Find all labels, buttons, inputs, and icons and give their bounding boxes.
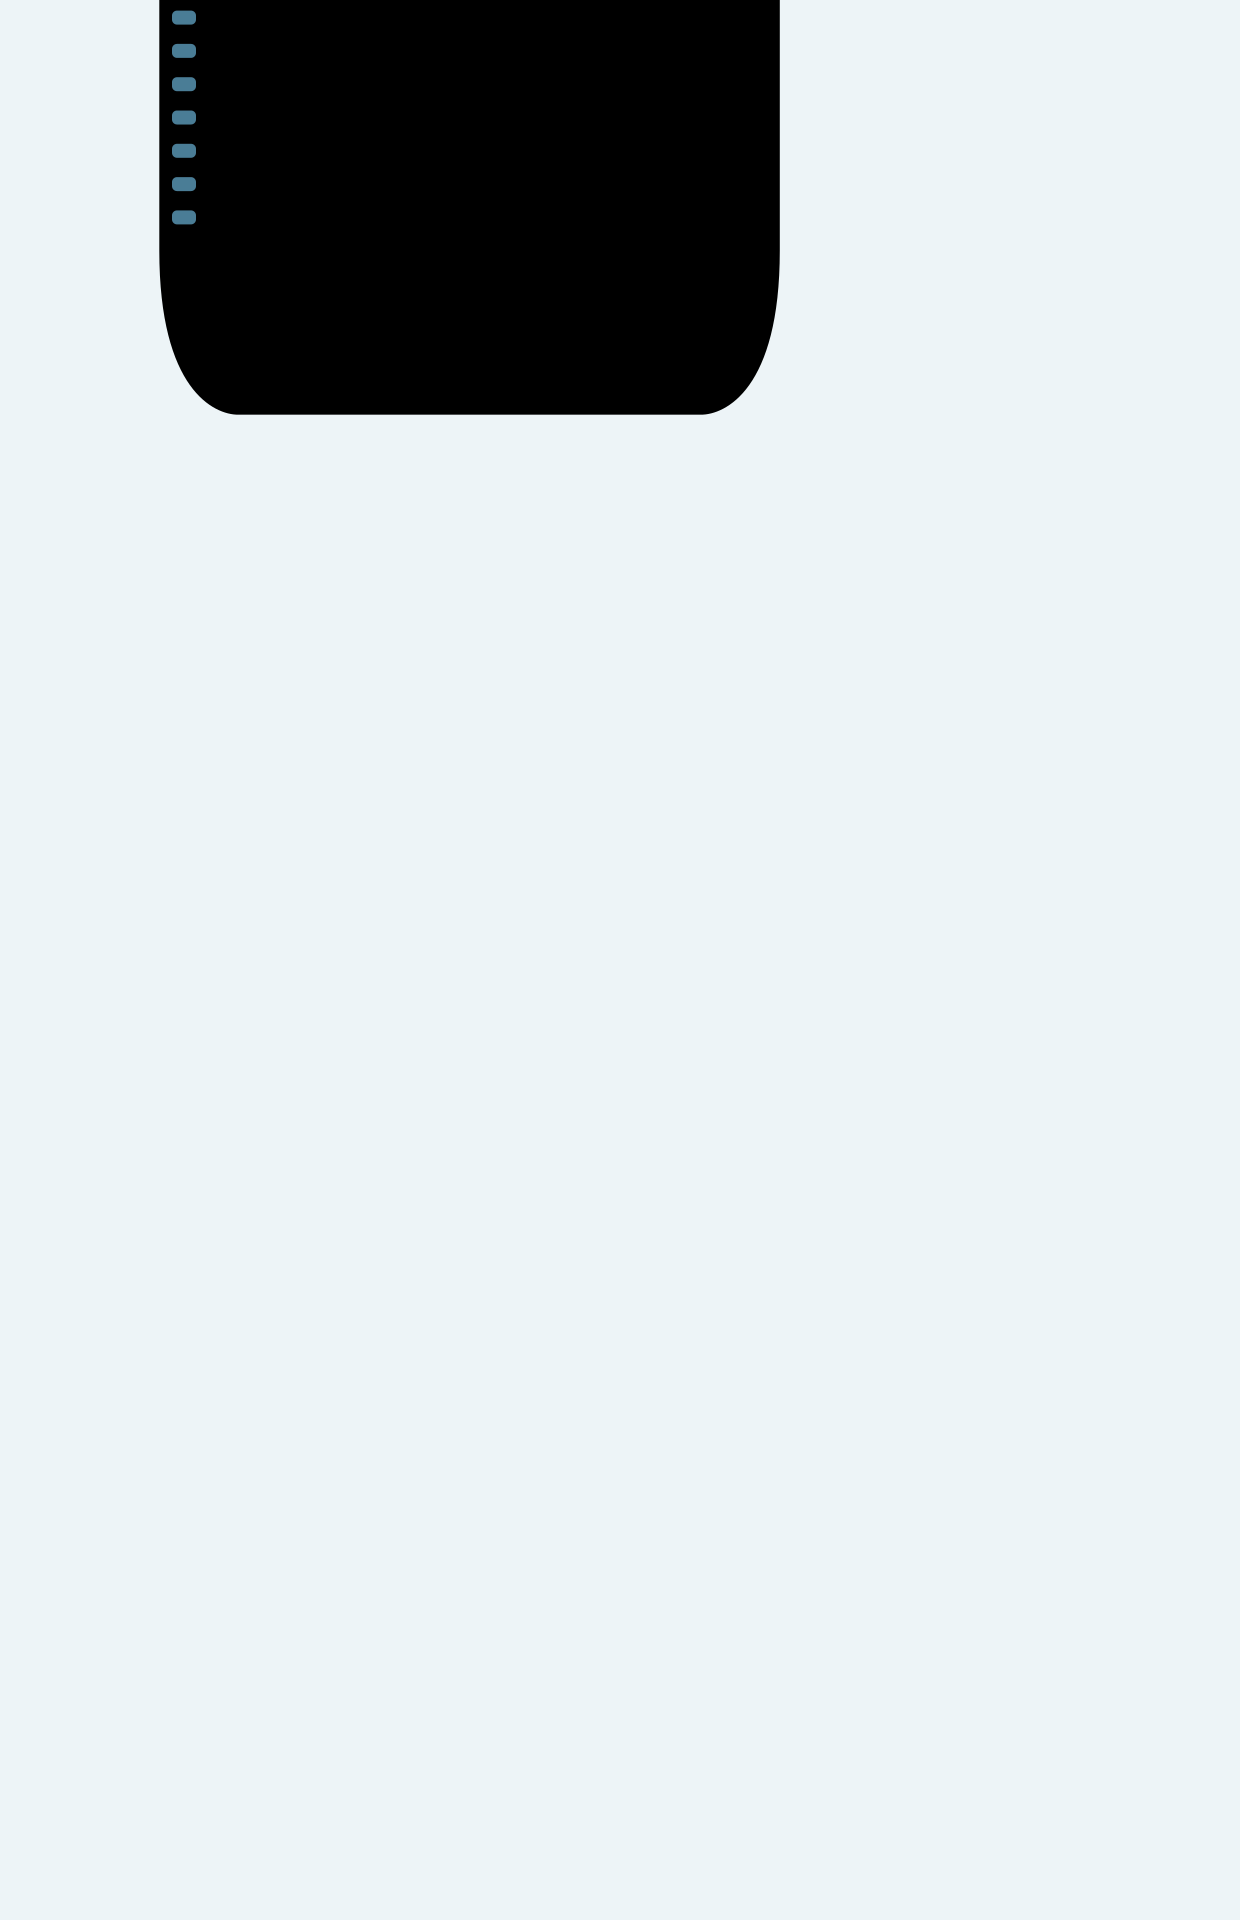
button[interactable]: Row 6 xyxy=(172,177,196,191)
button[interactable]: Row 1 xyxy=(172,11,196,25)
button[interactable]: Row 2 xyxy=(172,44,196,58)
button[interactable]: Row 3 xyxy=(172,77,196,91)
button[interactable]: Row 5 xyxy=(172,144,196,158)
button[interactable]: Row 7 xyxy=(172,210,196,224)
button[interactable]: Row 4 xyxy=(172,110,196,124)
